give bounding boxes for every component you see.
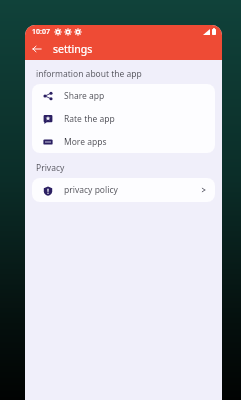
staticText: privacy policy — [64, 184, 201, 196]
button[interactable]: More apps — [32, 130, 215, 153]
staticText: More apps — [64, 136, 107, 148]
staticText: Rate the app — [64, 113, 115, 125]
staticText: 10:07 — [32, 27, 50, 37]
staticText: Share app — [64, 90, 105, 102]
button[interactable]: Share app — [32, 84, 215, 107]
button[interactable]: Back — [28, 40, 46, 58]
button[interactable]: Rate the app — [32, 107, 215, 130]
staticText: settings — [53, 42, 93, 56]
staticText: Privacy — [36, 162, 65, 174]
staticText: information about the app — [36, 68, 142, 80]
button[interactable]: privacy policy — [32, 178, 215, 202]
